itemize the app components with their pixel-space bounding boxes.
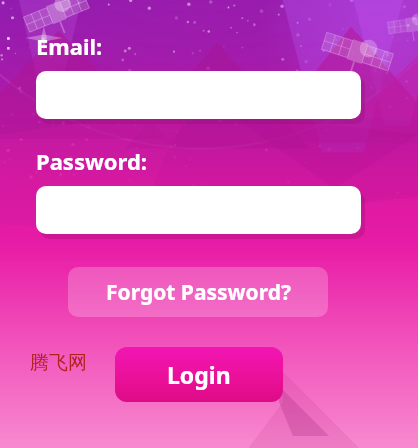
staticText: Login	[167, 359, 231, 390]
staticText: Email:	[36, 31, 103, 61]
staticText: 腾飞网	[30, 351, 87, 375]
staticText: Forgot Password?	[106, 278, 291, 307]
button[interactable]: Login	[115, 347, 283, 402]
button[interactable]: Forgot Password?	[68, 267, 328, 317]
staticText: Password:	[36, 146, 147, 176]
button[interactable]: Email input field	[36, 71, 361, 119]
button[interactable]: Password input field	[36, 186, 361, 234]
